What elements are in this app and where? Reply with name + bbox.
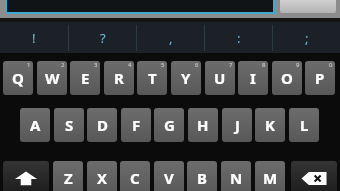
button[interactable]: U <box>205 61 235 95</box>
staticText: R <box>114 68 124 88</box>
button[interactable]: Search <box>280 0 336 13</box>
staticText: Y <box>181 68 191 88</box>
button[interactable]: ? <box>69 22 136 53</box>
staticText: ? <box>100 29 106 47</box>
button[interactable]: W <box>37 61 67 95</box>
staticText: S <box>65 115 74 135</box>
staticText: P <box>315 68 325 88</box>
staticText: 2 <box>61 61 65 69</box>
staticText: U <box>214 68 226 88</box>
staticText: A <box>30 115 41 135</box>
button[interactable]: O <box>272 61 302 95</box>
button[interactable]: T <box>137 61 167 95</box>
staticText: X <box>97 168 108 188</box>
staticText: T <box>148 68 157 88</box>
button[interactable]: R <box>104 61 134 95</box>
button[interactable]: K <box>255 108 285 142</box>
button[interactable]: ! <box>0 22 68 53</box>
staticText: N <box>230 168 243 188</box>
button[interactable]: Z <box>53 161 83 191</box>
staticText: G <box>164 115 175 135</box>
staticText: 5 <box>161 61 165 69</box>
button[interactable]: Q <box>3 61 33 95</box>
staticText: : <box>237 29 241 47</box>
staticText: K <box>265 115 275 135</box>
button[interactable]: B <box>187 161 217 191</box>
button[interactable]: ; <box>273 22 340 53</box>
staticText: O <box>281 68 293 88</box>
button[interactable]: H <box>188 108 218 142</box>
staticText: ! <box>32 29 36 47</box>
staticText: J <box>235 115 240 135</box>
staticText: 9 <box>296 61 300 69</box>
button[interactable]: N <box>221 161 251 191</box>
staticText: D <box>97 115 108 135</box>
button[interactable]: , <box>137 22 204 53</box>
button[interactable]: S <box>54 108 84 142</box>
staticText: E <box>81 68 90 88</box>
staticText: M <box>263 168 278 188</box>
staticText: , <box>169 29 173 47</box>
button[interactable]: E <box>70 61 100 95</box>
staticText: V <box>164 168 174 188</box>
staticText: 6 <box>195 61 199 69</box>
staticText: 3 <box>94 61 98 69</box>
staticText: ; <box>305 29 309 47</box>
staticText: 7 <box>229 61 233 69</box>
staticText: I <box>250 68 256 88</box>
staticText: 1 <box>27 61 31 69</box>
staticText: F <box>132 115 141 135</box>
staticText: H <box>197 115 209 135</box>
staticText: 0 <box>329 61 333 69</box>
button[interactable]: C <box>120 161 150 191</box>
button[interactable]: D <box>87 108 117 142</box>
staticText: 8 <box>262 61 266 69</box>
button[interactable]: X <box>87 161 117 191</box>
button[interactable]: A <box>20 108 50 142</box>
button[interactable]: J <box>222 108 252 142</box>
button[interactable]: Shift <box>3 161 49 191</box>
staticText: 4 <box>128 61 132 69</box>
staticText: Z <box>64 168 73 188</box>
staticText: W <box>45 68 60 88</box>
button[interactable]: F <box>121 108 151 142</box>
button[interactable]: Y <box>171 61 201 95</box>
staticText: L <box>300 115 309 135</box>
button[interactable]: P <box>305 61 335 95</box>
staticText: C <box>130 168 140 188</box>
staticText: Q <box>12 68 24 88</box>
button[interactable]: : <box>205 22 272 53</box>
button[interactable]: M <box>255 161 285 191</box>
button[interactable]: L <box>289 108 319 142</box>
staticText: B <box>197 168 207 188</box>
button[interactable]: G <box>154 108 184 142</box>
button[interactable]: V <box>154 161 184 191</box>
button[interactable]: I <box>238 61 268 95</box>
button[interactable]: Backspace <box>291 161 337 191</box>
